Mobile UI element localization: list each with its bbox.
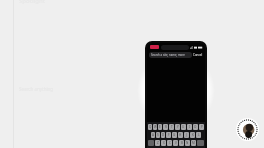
other: Cellular signal (190, 46, 193, 49)
button[interactable]: S (156, 132, 160, 138)
staticText: U (182, 125, 185, 129)
staticText: Y (177, 125, 179, 129)
button[interactable]: W (153, 124, 157, 130)
staticText: F (168, 133, 170, 137)
staticText: Z (157, 141, 159, 145)
button[interactable]: R (163, 124, 168, 130)
button[interactable]: V (173, 140, 178, 146)
button[interactable]: Y (175, 124, 180, 130)
button[interactable]: App logo (150, 45, 159, 49)
button[interactable]: Z (155, 140, 160, 146)
staticText: G (173, 133, 176, 137)
button[interactable] (161, 45, 189, 50)
button[interactable]: O (193, 124, 198, 130)
staticText: O (194, 125, 197, 129)
button[interactable]: T (169, 124, 174, 130)
button[interactable]: K (190, 132, 195, 138)
button[interactable]: D (161, 132, 165, 138)
button[interactable]: Presenter badge (236, 118, 259, 141)
button[interactable]: F (166, 132, 171, 138)
button[interactable]: Backspace (197, 140, 204, 146)
button[interactable]: Q (148, 124, 152, 130)
staticText: A (152, 133, 154, 137)
staticText: E (159, 125, 161, 129)
staticText: P (201, 125, 203, 129)
staticText: N (186, 141, 189, 145)
staticText: L (198, 133, 200, 137)
button[interactable]: H (178, 132, 183, 138)
button[interactable]: Shift (148, 140, 154, 146)
staticText: R (165, 125, 167, 129)
button[interactable]: Cancel (193, 53, 203, 57)
staticText: H (179, 133, 182, 137)
button[interactable]: I (187, 124, 192, 130)
button[interactable]: M (191, 140, 196, 146)
staticText: Search a site, name, more (151, 53, 185, 57)
button[interactable]: J (184, 132, 189, 138)
staticText: C (169, 141, 171, 145)
staticText: K (192, 133, 194, 137)
button[interactable]: L (196, 132, 201, 138)
staticText: S (157, 133, 159, 137)
staticText: D (162, 133, 165, 137)
other: Battery (198, 46, 203, 49)
button[interactable]: C (167, 140, 172, 146)
button[interactable]: Search a site, name, more (149, 52, 192, 58)
staticText: T (171, 125, 173, 129)
button[interactable]: A (151, 132, 155, 138)
button[interactable]: B (179, 140, 184, 146)
other: Wi-Fi (194, 46, 197, 49)
staticText: M (192, 141, 195, 145)
button[interactable]: G (172, 132, 177, 138)
button[interactable]: U (181, 124, 186, 130)
button[interactable]: X (161, 140, 166, 146)
staticText: W (154, 125, 157, 129)
button[interactable]: P (199, 124, 204, 130)
staticText: B (181, 141, 183, 145)
staticText: Q (149, 125, 152, 129)
staticText: X (163, 141, 165, 145)
button[interactable]: E (158, 124, 162, 130)
staticText: V (175, 141, 177, 145)
staticText: Cancel (193, 53, 203, 57)
staticText: I (189, 125, 191, 129)
button[interactable]: N (185, 140, 190, 146)
